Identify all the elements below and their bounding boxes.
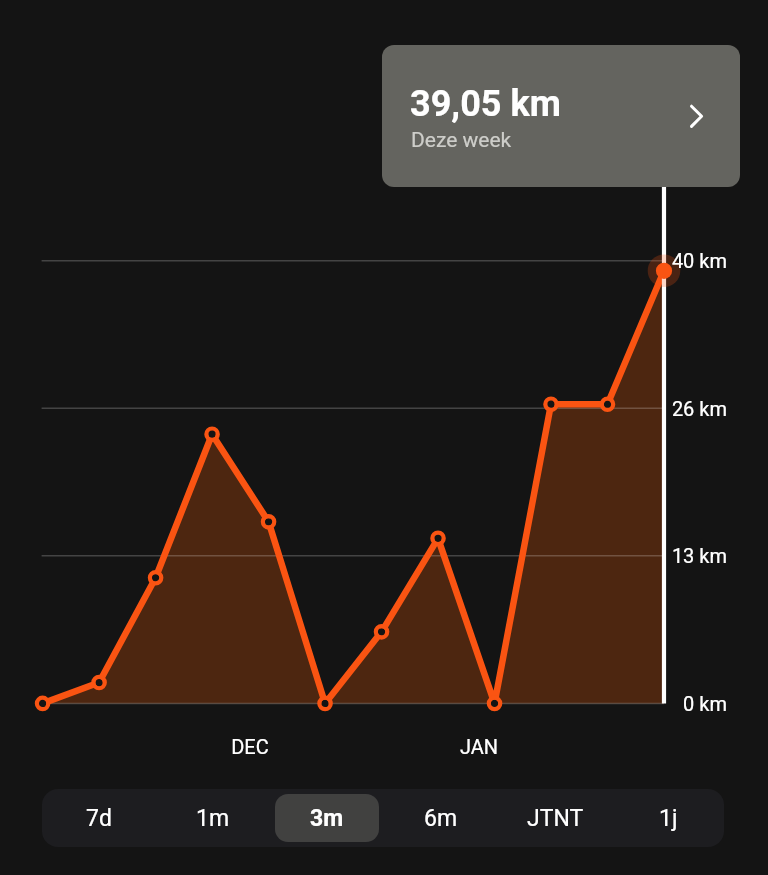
staticText: 1m xyxy=(196,805,230,832)
staticText: 26 km xyxy=(627,397,727,420)
staticText: 1j xyxy=(659,805,678,832)
other: Open weekly details xyxy=(667,91,711,135)
button[interactable]: 1j xyxy=(617,794,719,842)
button[interactable]: 39,05 km xyxy=(382,45,740,187)
staticText: 7d xyxy=(86,805,112,832)
staticText: DEC xyxy=(200,735,300,758)
button[interactable]: 7d xyxy=(47,794,151,842)
staticText: 13 km xyxy=(627,544,727,567)
staticText: 40 km xyxy=(627,249,727,272)
staticText: JTNT xyxy=(527,805,584,832)
button[interactable]: 6m xyxy=(389,794,493,842)
staticText: 3m xyxy=(310,805,344,832)
staticText: 39,05 km xyxy=(410,83,561,125)
button[interactable]: Distance chart, drag to scrub xyxy=(42,200,664,710)
button[interactable]: 1m xyxy=(161,794,265,842)
button[interactable]: 3m xyxy=(275,794,379,842)
staticText: JAN xyxy=(429,735,529,758)
staticText: 0 km xyxy=(627,692,727,715)
button[interactable]: JTNT xyxy=(503,794,607,842)
staticText: 6m xyxy=(424,805,458,832)
staticText: Deze week xyxy=(411,128,512,153)
